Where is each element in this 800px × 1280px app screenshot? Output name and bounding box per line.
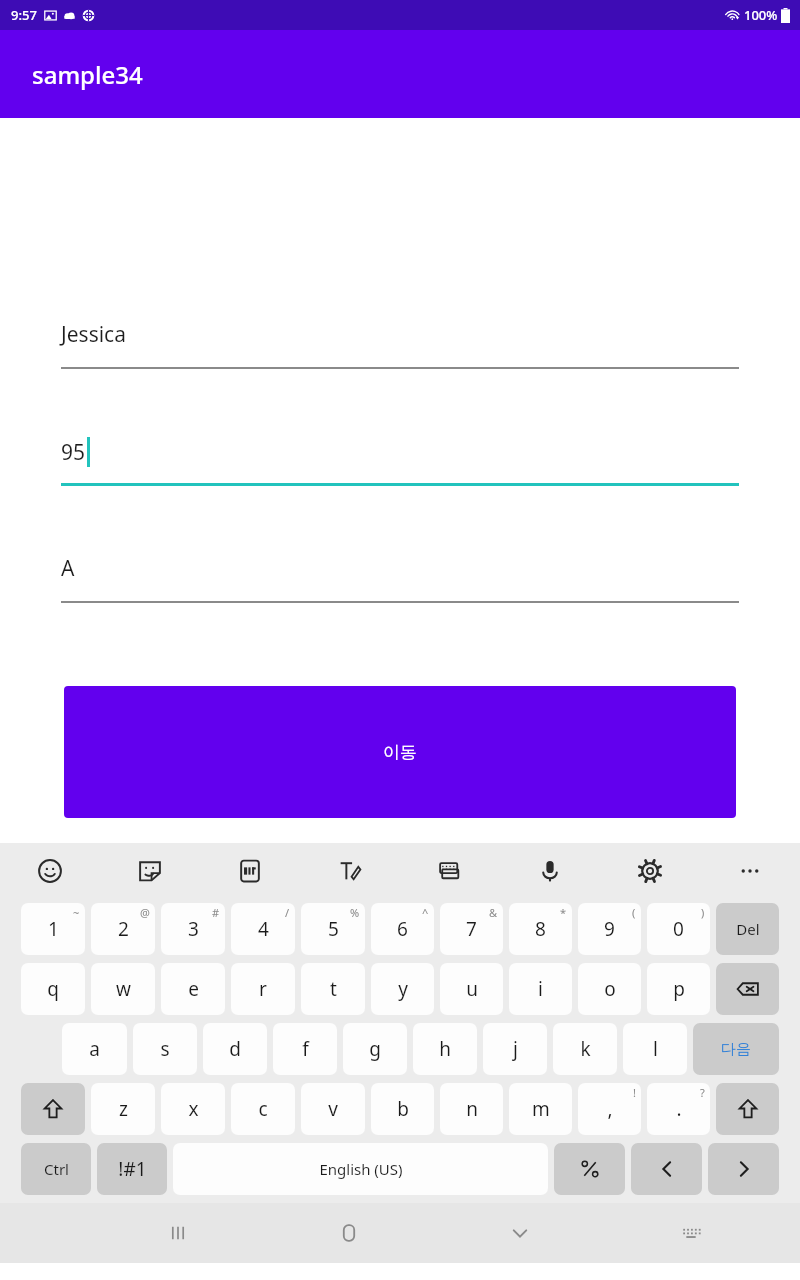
- staticText: 1: [48, 916, 59, 942]
- button[interactable]: k: [553, 1023, 617, 1075]
- button[interactable]: 1: [21, 903, 85, 955]
- button[interactable]: 4: [231, 903, 295, 955]
- button[interactable]: Korean English toggle: [554, 1143, 625, 1195]
- staticText: u: [466, 976, 478, 1002]
- button[interactable]: Shift: [21, 1083, 85, 1135]
- button[interactable]: Handwriting: [300, 843, 400, 899]
- staticText: r: [259, 976, 267, 1002]
- button[interactable]: Recents: [151, 1206, 205, 1260]
- button[interactable]: GIF: [200, 843, 300, 899]
- button[interactable]: 2: [91, 903, 155, 955]
- button[interactable]: c: [231, 1083, 295, 1135]
- button[interactable]: Shift: [716, 1083, 779, 1135]
- staticText: ,: [607, 1096, 613, 1122]
- staticText: English (US): [319, 1159, 403, 1179]
- button[interactable]: 7: [440, 903, 503, 955]
- button[interactable]: f: [273, 1023, 337, 1075]
- staticText: #: [212, 905, 220, 920]
- button[interactable]: j: [483, 1023, 547, 1075]
- button[interactable]: 95: [61, 437, 739, 486]
- staticText: 8: [535, 916, 546, 942]
- staticText: !: [633, 1085, 636, 1100]
- staticText: e: [188, 976, 199, 1002]
- button[interactable]: d: [203, 1023, 267, 1075]
- staticText: ^: [422, 905, 429, 920]
- button[interactable]: 이동: [64, 686, 736, 818]
- button[interactable]: g: [343, 1023, 407, 1075]
- button[interactable]: r: [231, 963, 295, 1015]
- button[interactable]: h: [413, 1023, 477, 1075]
- button[interactable]: x: [161, 1083, 225, 1135]
- button[interactable]: u: [440, 963, 503, 1015]
- button[interactable]: Jessica: [61, 320, 739, 369]
- button[interactable]: English (US): [173, 1143, 548, 1195]
- button[interactable]: More: [700, 843, 800, 899]
- staticText: n: [466, 1096, 478, 1122]
- button[interactable]: Hide keyboard: [493, 1206, 547, 1260]
- button[interactable]: l: [623, 1023, 687, 1075]
- button[interactable]: 9: [578, 903, 641, 955]
- staticText: j: [513, 1036, 518, 1062]
- staticText: &: [489, 905, 498, 920]
- staticText: A: [61, 554, 75, 583]
- button[interactable]: A: [61, 554, 739, 603]
- staticText: !#1: [118, 1156, 147, 1182]
- button[interactable]: Switch keyboard: [664, 1206, 718, 1260]
- button[interactable]: t: [301, 963, 365, 1015]
- staticText: (: [632, 905, 636, 920]
- button[interactable]: Home: [322, 1206, 376, 1260]
- staticText: f: [302, 1036, 309, 1062]
- button[interactable]: 다음: [693, 1023, 779, 1075]
- staticText: 2: [118, 916, 129, 942]
- button[interactable]: e: [161, 963, 225, 1015]
- staticText: Ctrl: [44, 1159, 69, 1179]
- button[interactable]: .: [647, 1083, 710, 1135]
- button[interactable]: !#1: [97, 1143, 167, 1195]
- button[interactable]: y: [371, 963, 434, 1015]
- staticText: 7: [466, 916, 477, 942]
- staticText: 0: [673, 916, 684, 942]
- button[interactable]: z: [91, 1083, 155, 1135]
- staticText: %: [350, 905, 360, 920]
- button[interactable]: w: [91, 963, 155, 1015]
- staticText: sample34: [32, 58, 143, 91]
- button[interactable]: q: [21, 963, 85, 1015]
- staticText: s: [160, 1036, 170, 1062]
- button[interactable]: p: [647, 963, 710, 1015]
- button[interactable]: ,: [578, 1083, 641, 1135]
- staticText: *: [560, 905, 567, 920]
- button[interactable]: Move cursor right: [708, 1143, 779, 1195]
- staticText: ?: [700, 1085, 705, 1100]
- button[interactable]: a: [62, 1023, 127, 1075]
- button[interactable]: v: [301, 1083, 365, 1135]
- button[interactable]: Keyboard modes: [400, 843, 500, 899]
- staticText: x: [188, 1096, 199, 1122]
- button[interactable]: 5: [301, 903, 365, 955]
- button[interactable]: i: [509, 963, 572, 1015]
- button[interactable]: Stickers: [100, 843, 200, 899]
- button[interactable]: Emoji: [0, 843, 100, 899]
- button[interactable]: 8: [509, 903, 572, 955]
- staticText: 100%: [744, 6, 778, 24]
- button[interactable]: m: [509, 1083, 572, 1135]
- button[interactable]: s: [133, 1023, 197, 1075]
- button[interactable]: 0: [647, 903, 710, 955]
- staticText: 다음: [721, 1040, 751, 1059]
- staticText: k: [580, 1036, 591, 1062]
- button[interactable]: n: [440, 1083, 503, 1135]
- button[interactable]: Ctrl: [21, 1143, 91, 1195]
- button[interactable]: Backspace: [716, 963, 779, 1015]
- button[interactable]: 6: [371, 903, 434, 955]
- button[interactable]: Del: [716, 903, 779, 955]
- staticText: a: [89, 1036, 100, 1062]
- button[interactable]: Voice input: [500, 843, 600, 899]
- staticText: o: [604, 976, 616, 1002]
- button[interactable]: Settings: [600, 843, 700, 899]
- button[interactable]: o: [578, 963, 641, 1015]
- staticText: 9:57: [11, 6, 37, 24]
- staticText: b: [397, 1096, 409, 1122]
- button[interactable]: Move cursor left: [631, 1143, 702, 1195]
- staticText: p: [673, 976, 685, 1002]
- button[interactable]: 3: [161, 903, 225, 955]
- button[interactable]: b: [371, 1083, 434, 1135]
